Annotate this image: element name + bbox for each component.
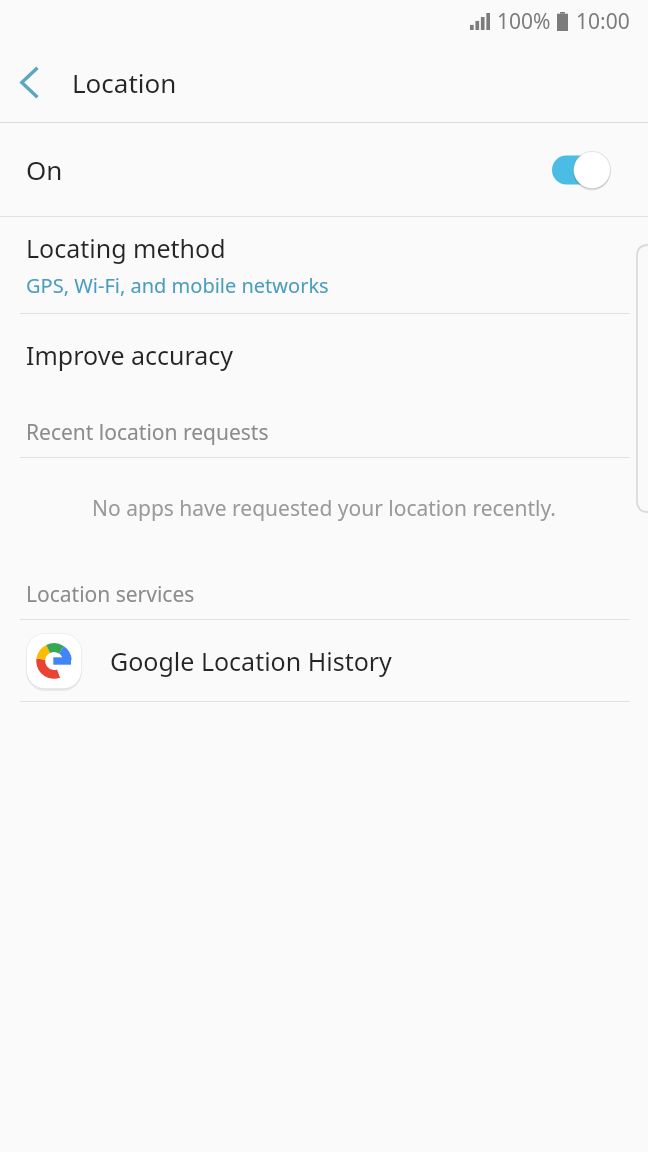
staticText: Locating method: [26, 231, 226, 265]
staticText: Location services: [26, 580, 195, 609]
staticText: No apps have requested your location rec…: [92, 494, 556, 523]
staticText: Recent location requests: [26, 418, 269, 447]
button[interactable]: On: [0, 123, 648, 216]
staticText: On: [26, 152, 63, 187]
staticText: Improve accuracy: [26, 338, 234, 372]
staticText: Location: [72, 65, 177, 100]
staticText: Google Location History: [110, 644, 392, 678]
button[interactable]: Locating method: [0, 217, 648, 313]
staticText: 100%: [497, 7, 551, 36]
button[interactable]: Google Location History: [0, 620, 648, 701]
button[interactable]: Back: [0, 42, 58, 122]
staticText: 10:00: [576, 7, 630, 36]
button[interactable]: Improve accuracy: [0, 314, 648, 395]
staticText: GPS, Wi-Fi, and mobile networks: [26, 272, 329, 299]
